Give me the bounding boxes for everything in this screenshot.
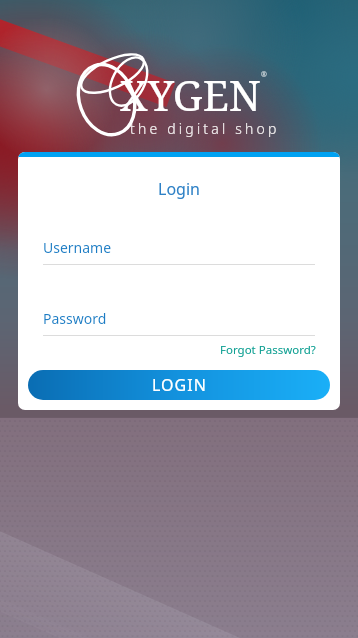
button[interactable]: Username xyxy=(43,238,315,265)
staticText: XYGEN xyxy=(120,66,261,123)
staticText: Forgot Password? xyxy=(220,342,316,358)
other: Oxygen the digital shop logo xyxy=(64,60,294,148)
staticText: LOGIN xyxy=(152,374,207,396)
staticText: Login xyxy=(158,178,200,200)
staticText: Password xyxy=(43,309,107,328)
button[interactable]: Password xyxy=(43,309,315,336)
button[interactable]: LOGIN xyxy=(28,370,330,400)
staticText: the digital shop xyxy=(130,119,280,138)
staticText: ® xyxy=(261,70,267,80)
button[interactable]: Forgot Password? xyxy=(217,339,319,361)
staticText: Username xyxy=(43,238,112,257)
